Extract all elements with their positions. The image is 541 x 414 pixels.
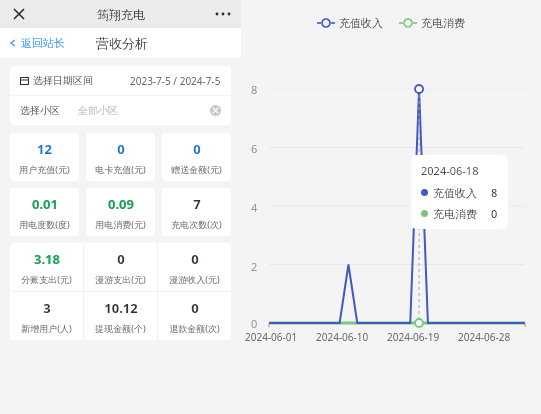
staticText: 2: [251, 259, 258, 274]
button[interactable]: 0: [158, 243, 231, 291]
staticText: 提现金额(个): [95, 322, 146, 334]
staticText: 2024-06-18: [421, 163, 479, 178]
button[interactable]: More options: [213, 4, 233, 24]
staticText: 用电度数(度): [19, 218, 70, 230]
staticText: 10.12: [104, 299, 138, 317]
button[interactable]: 0: [84, 243, 157, 291]
staticText: 充值收入: [433, 186, 477, 200]
button[interactable]: 0.09: [86, 188, 155, 236]
staticText: 选择小区: [20, 104, 60, 117]
button[interactable]: Close: [8, 3, 30, 25]
staticText: 0: [191, 299, 199, 317]
staticText: 电卡充值(元): [95, 163, 146, 175]
staticText: 6: [251, 141, 258, 156]
staticText: 漫游支出(元): [95, 273, 146, 285]
button[interactable]: 0.01: [10, 188, 79, 236]
staticText: 漫游收入(元): [169, 273, 220, 285]
staticText: 分账支出(元): [21, 273, 72, 285]
staticText: 8: [251, 82, 258, 97]
staticText: 0: [191, 250, 199, 268]
staticText: 0.09: [108, 195, 134, 213]
staticText: 0: [117, 250, 125, 268]
button[interactable]: 3: [10, 292, 83, 340]
staticText: 返回站长: [21, 36, 65, 50]
staticText: 退款金额(次): [169, 322, 220, 334]
staticText: 3: [43, 299, 51, 317]
staticText: 赠送金额(元): [171, 163, 222, 175]
staticText: 用电消费(元): [95, 218, 146, 230]
staticText: 充电消费: [421, 16, 465, 30]
staticText: 用户充值(元): [19, 163, 70, 175]
button[interactable]: 10.12: [84, 292, 157, 340]
button[interactable]: 12: [10, 133, 79, 181]
staticText: 12: [37, 140, 52, 158]
staticText: 0: [193, 140, 201, 158]
staticText: 2024-06-19: [387, 330, 440, 344]
button[interactable]: 0: [158, 292, 231, 340]
staticText: 充值收入: [339, 16, 383, 30]
staticText: 营收分析: [96, 35, 148, 51]
staticText: 充电次数(次): [171, 218, 222, 230]
button[interactable]: 返回站长: [8, 36, 65, 50]
staticText: 选择日期区间: [33, 74, 93, 87]
staticText: 7: [193, 195, 201, 213]
staticText: 4: [251, 200, 258, 215]
staticText: 新增用户(人): [21, 322, 72, 334]
button[interactable]: 7: [162, 188, 231, 236]
staticText: 2024-06-01: [245, 330, 298, 344]
staticText: 全部小区: [78, 104, 118, 117]
button[interactable]: 3.18: [10, 243, 83, 291]
staticText: 2024-06-28: [458, 330, 511, 344]
staticText: 8: [491, 185, 498, 200]
button[interactable]: 选择日期区间: [10, 66, 231, 95]
staticText: 0: [117, 140, 125, 158]
button[interactable]: 充电消费: [399, 16, 465, 30]
staticText: 3.18: [34, 250, 60, 268]
staticText: 0.01: [32, 195, 58, 213]
staticText: 筠翔充电: [97, 7, 145, 22]
button[interactable]: 0: [162, 133, 231, 181]
button[interactable]: Clear: [210, 105, 221, 116]
staticText: 0: [251, 316, 258, 331]
staticText: 2023-7-5 / 2024-7-5: [130, 74, 221, 88]
button[interactable]: 选择小区: [10, 96, 231, 125]
staticText: 0: [491, 206, 498, 221]
button[interactable]: 0: [86, 133, 155, 181]
staticText: 2024-06-10: [316, 330, 369, 344]
staticText: 充电消费: [433, 207, 477, 221]
button[interactable]: 充值收入: [317, 16, 383, 30]
